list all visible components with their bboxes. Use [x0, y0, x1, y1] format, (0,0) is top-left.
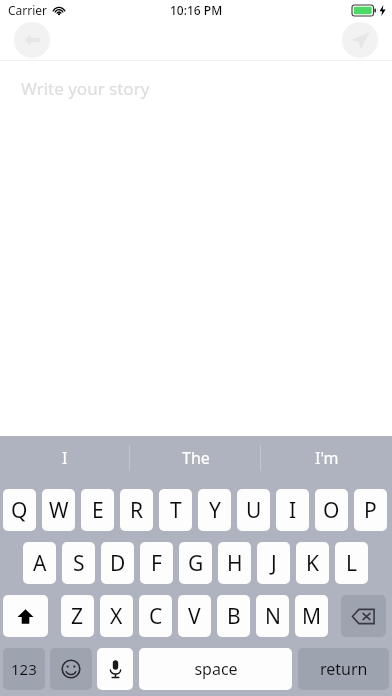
staticText: S — [73, 549, 85, 578]
button[interactable]: C — [139, 595, 172, 637]
staticText: W — [49, 496, 69, 525]
staticText: F — [151, 549, 162, 578]
staticText: Write your story — [21, 77, 150, 100]
button[interactable]: Back — [14, 22, 50, 58]
button[interactable]: B — [217, 595, 250, 637]
button[interactable]: J — [257, 542, 290, 584]
staticText: G — [188, 549, 204, 578]
staticText: Carrier — [8, 2, 48, 18]
button[interactable]: I — [0, 436, 130, 480]
staticText: 123 — [11, 659, 37, 679]
staticText: P — [364, 496, 377, 525]
button[interactable]: Shift — [3, 595, 48, 637]
staticText: C — [149, 602, 163, 631]
button[interactable]: U — [237, 489, 270, 531]
staticText: M — [302, 602, 322, 631]
staticText: T — [170, 496, 182, 525]
button[interactable]: P — [354, 489, 387, 531]
staticText: L — [346, 549, 358, 578]
button[interactable]: Backspace — [341, 595, 386, 637]
staticText: I — [62, 447, 68, 469]
button[interactable]: The — [130, 436, 261, 480]
button[interactable]: D — [101, 542, 134, 584]
staticText: Y — [209, 496, 221, 525]
button[interactable]: space — [139, 648, 292, 690]
staticText: R — [130, 496, 144, 525]
button[interactable]: return — [298, 648, 389, 690]
staticText: 10:16 PM — [170, 2, 223, 18]
staticText: N — [265, 602, 281, 631]
staticText: O — [323, 496, 340, 525]
staticText: K — [306, 549, 319, 578]
staticText: J — [271, 549, 277, 578]
staticText: H — [227, 549, 243, 578]
staticText: V — [188, 602, 201, 631]
button[interactable]: W — [42, 489, 75, 531]
button[interactable]: 123 — [3, 648, 45, 690]
staticText: Z — [71, 602, 84, 631]
button[interactable]: V — [178, 595, 211, 637]
staticText: space — [194, 658, 238, 680]
button[interactable]: I — [276, 489, 309, 531]
staticText: Q — [11, 496, 28, 525]
staticText: D — [110, 549, 126, 578]
button[interactable]: K — [296, 542, 329, 584]
staticText: E — [92, 496, 104, 525]
staticText: I — [289, 496, 297, 525]
button[interactable]: S — [62, 542, 95, 584]
button[interactable]: Q — [3, 489, 36, 531]
staticText: U — [246, 496, 262, 525]
button[interactable]: R — [120, 489, 153, 531]
button[interactable]: H — [218, 542, 251, 584]
button[interactable]: T — [159, 489, 192, 531]
button[interactable]: O — [315, 489, 348, 531]
button[interactable]: G — [179, 542, 212, 584]
staticText: X — [110, 602, 123, 631]
button[interactable]: E — [81, 489, 114, 531]
button[interactable]: Send — [342, 22, 378, 58]
staticText: I'm — [315, 447, 339, 469]
button[interactable]: L — [335, 542, 368, 584]
staticText: B — [227, 602, 241, 631]
button[interactable]: X — [100, 595, 133, 637]
button[interactable]: Emoji — [50, 648, 92, 690]
button[interactable]: I'm — [261, 436, 392, 480]
button[interactable]: F — [140, 542, 173, 584]
button[interactable]: Z — [61, 595, 94, 637]
button[interactable]: Y — [198, 489, 231, 531]
button[interactable]: A — [23, 542, 56, 584]
staticText: return — [320, 658, 368, 680]
button[interactable]: Dictation — [97, 648, 133, 690]
button[interactable]: M — [295, 595, 328, 637]
staticText: A — [33, 549, 47, 578]
button[interactable]: N — [256, 595, 289, 637]
staticText: The — [182, 447, 210, 469]
